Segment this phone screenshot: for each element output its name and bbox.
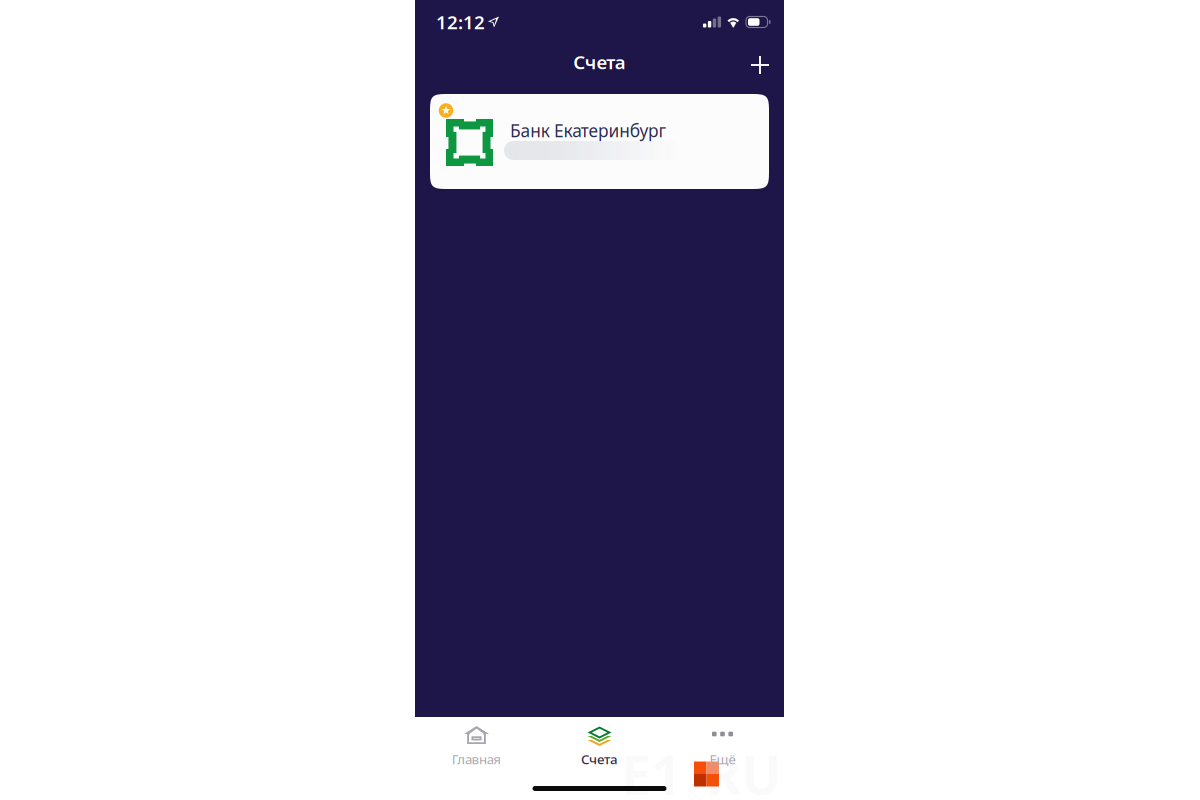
staticText: Счета: [573, 50, 626, 74]
staticText: Счета: [581, 750, 618, 768]
button[interactable]: Главная: [415, 722, 538, 770]
staticText: E1: [621, 739, 682, 800]
button[interactable]: Банк Екатеринбург: [430, 94, 769, 189]
staticText: Банк Екатеринбург: [510, 119, 667, 142]
button[interactable]: Добавить счёт: [740, 45, 780, 85]
staticText: 12:12: [436, 10, 485, 34]
staticText: RU: [706, 739, 781, 800]
staticText: Главная: [452, 750, 501, 768]
button[interactable]: Счета: [538, 722, 661, 770]
button[interactable]: Ещё: [661, 722, 784, 770]
staticText: Ещё: [709, 750, 735, 768]
